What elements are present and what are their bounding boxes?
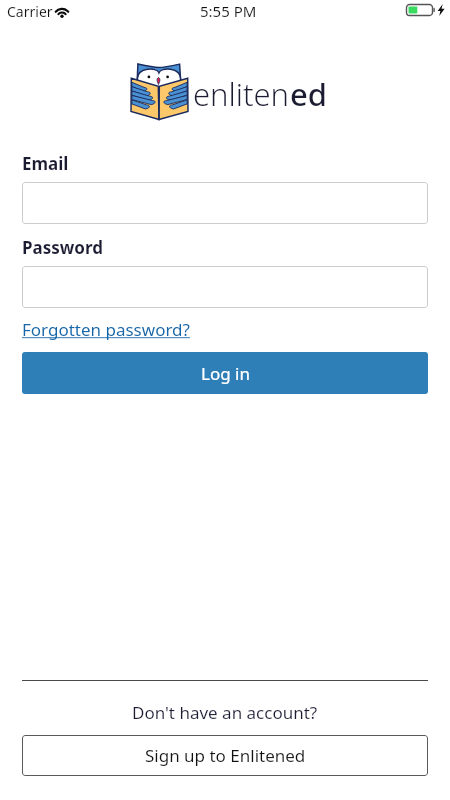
- other: Battery: [406, 4, 435, 16]
- staticText: Carrier: [7, 2, 53, 21]
- staticText: Log in: [201, 362, 250, 385]
- staticText: Don't have an account?: [132, 701, 318, 724]
- button[interactable]: Sign up to Enlitened: [22, 735, 428, 776]
- staticText: Email: [22, 152, 69, 175]
- staticText: enliten: [193, 73, 290, 115]
- staticText: ed: [290, 73, 328, 115]
- staticText: Forgotten password?: [22, 318, 190, 341]
- button[interactable]: Email input: [22, 182, 428, 224]
- staticText: Sign up to Enlitened: [145, 744, 306, 767]
- staticText: Password: [22, 236, 103, 259]
- button[interactable]: Forgotten password?: [22, 318, 190, 341]
- other: Wi-Fi: [54, 5, 70, 17]
- staticText: 5:55 PM: [200, 1, 257, 21]
- button[interactable]: Log in: [22, 352, 428, 394]
- other: Charging: [437, 4, 445, 16]
- button[interactable]: Password input: [22, 266, 428, 308]
- other: Enlitened logo: [131, 61, 188, 121]
